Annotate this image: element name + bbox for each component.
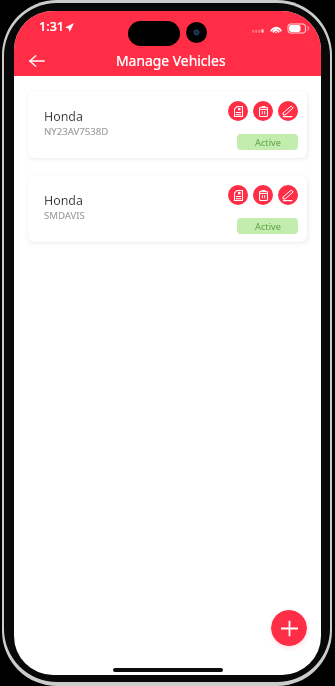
button[interactable]: Add vehicle — [271, 610, 307, 646]
button[interactable]: Honda — [28, 91, 307, 158]
staticText: Active — [255, 136, 281, 149]
staticText: Active — [255, 220, 281, 233]
button[interactable]: Documents — [228, 185, 248, 205]
staticText: 1:31 — [39, 18, 65, 35]
button[interactable]: Edit — [278, 101, 298, 121]
staticText: Honda — [44, 192, 83, 209]
button[interactable]: Active — [237, 218, 298, 234]
button[interactable]: Documents — [228, 101, 248, 121]
staticText: NY23AV7538D — [44, 125, 109, 138]
staticText: SMDAVIS — [44, 209, 85, 222]
button[interactable]: Active — [237, 134, 298, 150]
button[interactable]: Edit — [278, 185, 298, 205]
staticText: Honda — [44, 108, 83, 125]
button[interactable]: Delete — [253, 101, 273, 121]
button[interactable]: Back — [23, 47, 51, 75]
button[interactable]: Delete — [253, 185, 273, 205]
staticText: Manage Vehicles — [116, 51, 226, 70]
button[interactable]: Honda — [28, 175, 307, 242]
